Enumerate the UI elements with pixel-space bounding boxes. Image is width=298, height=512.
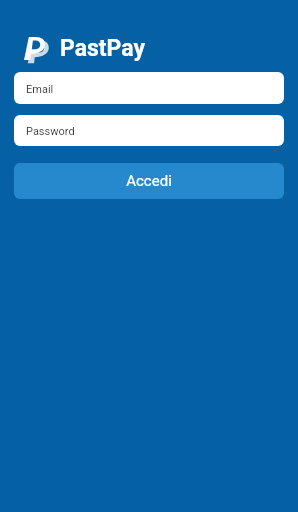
staticText: Email: [26, 83, 54, 96]
button[interactable]: Email: [14, 72, 284, 104]
button[interactable]: Accedi: [14, 163, 284, 199]
staticText: Password: [26, 125, 75, 138]
staticText: PastPay: [60, 35, 146, 62]
staticText: Accedi: [126, 172, 172, 190]
other: PastPay logo: [24, 37, 56, 69]
button[interactable]: Password: [14, 115, 284, 146]
